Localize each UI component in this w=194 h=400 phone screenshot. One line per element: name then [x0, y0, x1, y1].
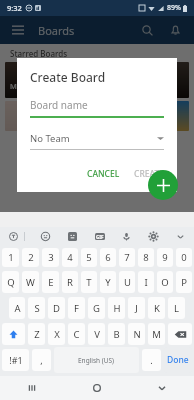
button[interactable]: 4	[62, 248, 78, 267]
button[interactable]: Create board	[148, 170, 178, 200]
staticText: English (US)	[78, 356, 115, 365]
staticText: J	[135, 302, 138, 315]
staticText: 89%	[167, 3, 181, 13]
button[interactable]: H	[108, 297, 125, 319]
staticText: I	[144, 276, 148, 289]
button[interactable]: Shift	[2, 323, 25, 345]
staticText: U	[124, 276, 131, 289]
button[interactable]: Home	[64, 376, 129, 400]
staticText: Ministering Families	[10, 81, 81, 91]
button[interactable]: P	[176, 271, 192, 293]
staticText: M	[152, 328, 161, 341]
staticText: 4	[67, 251, 73, 264]
staticText: 0	[181, 251, 187, 264]
button[interactable]: 7	[119, 248, 135, 267]
staticText: Y	[105, 276, 111, 289]
button[interactable]: Translate	[6, 229, 21, 244]
button[interactable]: B	[108, 323, 125, 345]
staticText: 9:32	[7, 3, 22, 13]
button[interactable]: I	[138, 271, 154, 293]
button[interactable]: Z	[28, 323, 45, 345]
button[interactable]: Emoji	[38, 229, 53, 244]
button[interactable]: N	[128, 323, 145, 345]
staticText: 2	[28, 251, 34, 264]
button[interactable]: T	[81, 271, 97, 293]
staticText: K	[154, 302, 160, 315]
button[interactable]: !#1	[2, 349, 29, 371]
staticText: W	[26, 276, 35, 289]
staticText: 8	[143, 251, 149, 264]
staticText: E	[48, 276, 54, 289]
staticText: GIF	[96, 234, 104, 240]
button[interactable]: L	[168, 297, 185, 319]
button[interactable]: S	[28, 297, 45, 319]
button[interactable]: 6	[100, 248, 116, 267]
staticText: X	[54, 328, 60, 341]
staticText: 9	[162, 251, 168, 264]
button[interactable]: R	[62, 271, 78, 293]
button[interactable]: G	[88, 297, 105, 319]
button[interactable]: O	[157, 271, 173, 293]
button[interactable]: D	[48, 297, 65, 319]
button[interactable]: U	[119, 271, 135, 293]
button[interactable]	[5, 101, 95, 131]
button[interactable]: J	[128, 297, 145, 319]
staticText: F	[74, 302, 79, 315]
button[interactable]: Open navigation menu	[8, 20, 28, 40]
staticText: G	[93, 302, 100, 315]
button[interactable]: CANCEL	[80, 164, 127, 184]
staticText: O	[161, 276, 169, 289]
button[interactable]: .	[142, 349, 161, 371]
button[interactable]: 1	[2, 248, 19, 267]
staticText: Create Board	[30, 69, 106, 85]
button[interactable]: C	[68, 323, 85, 345]
button[interactable]: RESET Course	[99, 62, 189, 98]
button[interactable]: A	[9, 297, 25, 319]
button[interactable]: 5	[81, 248, 97, 267]
button[interactable]: K	[148, 297, 165, 319]
button[interactable]: X	[48, 323, 65, 345]
button[interactable]: Voice input	[119, 229, 134, 244]
button[interactable]: 2	[22, 248, 39, 267]
button[interactable]: No Team	[30, 132, 164, 150]
button[interactable]: Q	[2, 271, 19, 293]
button[interactable]: F	[68, 297, 85, 319]
button[interactable]: Keyboard settings	[146, 229, 161, 244]
staticText: V	[94, 328, 100, 341]
button[interactable]: W	[22, 271, 39, 293]
button[interactable]: More options	[173, 229, 188, 244]
button[interactable]: 0	[176, 248, 192, 267]
button[interactable]: Notifications	[164, 19, 186, 41]
staticText: 6	[105, 251, 111, 264]
button[interactable]: Search	[136, 19, 158, 41]
button[interactable]: Recents	[0, 376, 64, 400]
button[interactable]: English (US)	[54, 347, 139, 373]
button[interactable]: E	[42, 271, 59, 293]
staticText: A	[14, 302, 21, 315]
button[interactable]: 3	[42, 248, 59, 267]
button[interactable]: Done	[164, 347, 192, 373]
button[interactable]: Board name	[30, 98, 164, 118]
button[interactable]: Stickers	[65, 229, 80, 244]
button[interactable]: M	[148, 323, 165, 345]
button[interactable]: 8	[138, 248, 154, 267]
button[interactable]: Backspace	[168, 323, 192, 345]
staticText: T	[86, 276, 92, 289]
staticText: CANCEL	[87, 168, 120, 180]
button[interactable]: ,	[32, 349, 51, 371]
button[interactable]: Hide keyboard	[129, 376, 194, 400]
staticText: Boards	[38, 23, 75, 38]
button[interactable]: Ministering Families	[5, 62, 95, 98]
staticText: D	[53, 302, 60, 315]
button[interactable]: V	[88, 323, 105, 345]
button[interactable]: GIF	[92, 229, 107, 244]
staticText: H	[113, 302, 121, 315]
staticText: P	[181, 276, 187, 289]
button[interactable]	[99, 101, 189, 131]
button[interactable]: 9	[157, 248, 173, 267]
button[interactable]: Y	[100, 271, 116, 293]
staticText: 1	[8, 251, 14, 264]
staticText: 7	[124, 251, 130, 264]
button[interactable]: CREATE	[127, 164, 171, 184]
